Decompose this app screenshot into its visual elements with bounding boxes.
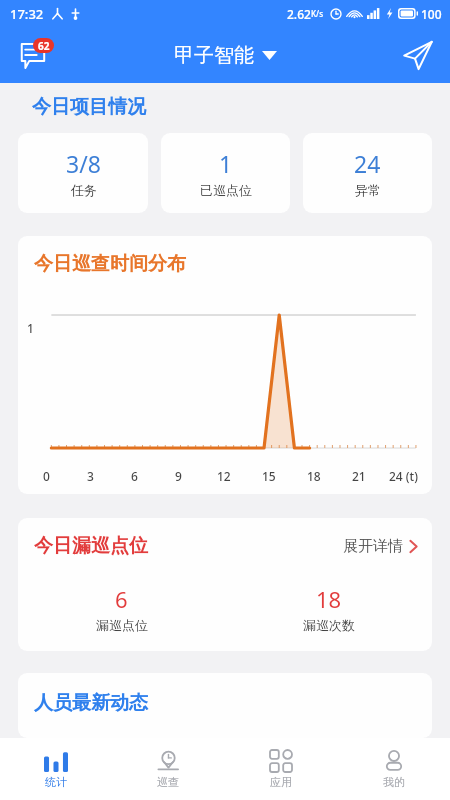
button[interactable]: Messages, 62 unread	[12, 33, 56, 77]
staticText: 1	[219, 148, 233, 179]
button[interactable]: 1	[161, 133, 290, 213]
staticText: 17:32	[10, 5, 44, 23]
staticText: 漏巡点位	[96, 617, 148, 633]
staticText: 62	[38, 39, 50, 53]
staticText: 任务	[71, 182, 97, 198]
staticText: 21	[352, 468, 366, 484]
button[interactable]: 18	[225, 584, 432, 633]
staticText: 6	[115, 584, 128, 614]
button[interactable]: 展开详情	[343, 537, 418, 556]
staticText: 6	[131, 468, 138, 484]
staticText: 应用	[270, 775, 292, 789]
staticText: 甲子智能	[174, 43, 254, 68]
staticText: 人员最新动态	[34, 691, 148, 715]
staticText: 100	[421, 6, 442, 22]
staticText: 漏巡次数	[303, 617, 355, 633]
staticText: 18	[307, 468, 321, 484]
button[interactable]: 甲子智能	[174, 43, 277, 68]
staticText: 今日巡查时间分布	[34, 252, 186, 276]
button[interactable]: 今日巡查时间分布	[18, 236, 432, 494]
button[interactable]: 我的	[337, 738, 450, 800]
button[interactable]: 巡查	[112, 738, 224, 800]
staticText: 今日漏巡点位	[34, 534, 148, 558]
staticText: 24	[354, 148, 381, 179]
staticText: 24 (t)	[389, 468, 418, 484]
staticText: 0	[43, 468, 50, 484]
staticText: 已巡点位	[200, 182, 252, 198]
staticText: 展开详情	[343, 537, 403, 556]
staticText: 异常	[355, 182, 381, 198]
button[interactable]: 统计	[0, 738, 112, 800]
staticText: 15	[262, 468, 276, 484]
staticText: 12	[217, 468, 231, 484]
staticText: 1	[27, 320, 34, 336]
button[interactable]: 24	[303, 133, 432, 213]
staticText: 9	[175, 468, 182, 484]
staticText: 3/8	[66, 148, 101, 179]
staticText: 3	[87, 468, 94, 484]
staticText: K/s	[311, 8, 324, 19]
staticText: 今日项目情况	[32, 95, 146, 119]
button[interactable]: Send	[396, 33, 440, 77]
staticText: 18	[316, 584, 342, 614]
button[interactable]: 6	[18, 584, 225, 633]
staticText: 我的	[383, 775, 405, 789]
button[interactable]: 3/8	[18, 133, 148, 213]
staticText: 巡查	[157, 775, 179, 789]
button[interactable]: 应用	[224, 738, 337, 800]
staticText: 2.62	[287, 6, 311, 22]
button[interactable]: 人员最新动态	[18, 673, 432, 738]
staticText: 统计	[45, 775, 67, 789]
